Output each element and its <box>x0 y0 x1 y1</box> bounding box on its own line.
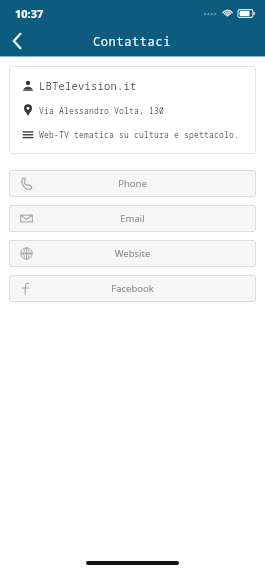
button[interactable]: Web-TV tematica su cultura e spettacolo. <box>9 122 256 146</box>
button[interactable]: Phone <box>9 170 256 197</box>
staticText: Web-TV tematica su cultura e spettacolo. <box>39 129 239 140</box>
staticText: 10:37 <box>15 6 44 21</box>
button[interactable]: LBTelevision.it <box>9 74 256 98</box>
staticText: Via Alessandro Volta, 130 <box>39 105 164 116</box>
staticText: Website <box>9 247 256 260</box>
staticText: LBTelevision.it <box>39 79 137 93</box>
staticText: Facebook <box>9 282 256 295</box>
button[interactable]: Via Alessandro Volta, 130 <box>9 98 256 122</box>
button[interactable]: Email <box>9 205 256 232</box>
button[interactable]: Website <box>9 240 256 267</box>
staticText: Phone <box>9 177 256 190</box>
button[interactable]: Back <box>0 26 34 56</box>
staticText: Email <box>9 212 256 225</box>
button[interactable]: Facebook <box>9 275 256 302</box>
staticText: Contattaci <box>93 33 172 49</box>
